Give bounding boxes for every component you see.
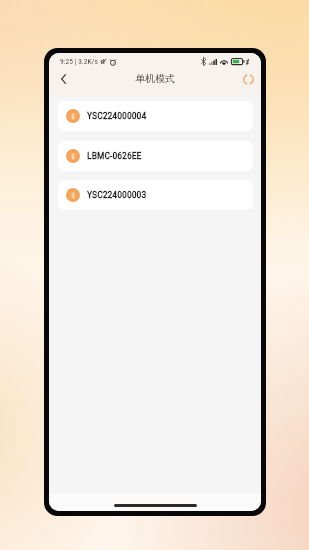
button[interactable]: Refresh xyxy=(240,71,256,87)
button[interactable]: YSC224000004 xyxy=(58,101,253,131)
staticText: 单机模式 xyxy=(135,72,175,85)
staticText: YSC224000003 xyxy=(87,189,147,200)
staticText: LBMC-0626EE xyxy=(87,150,142,161)
staticText: YSC224000004 xyxy=(87,110,147,121)
staticText: 9:25 | 3.2K/s xyxy=(60,57,98,66)
button[interactable]: Back xyxy=(55,71,71,87)
button[interactable]: YSC224000003 xyxy=(58,180,253,210)
button[interactable]: LBMC-0626EE xyxy=(58,141,253,171)
